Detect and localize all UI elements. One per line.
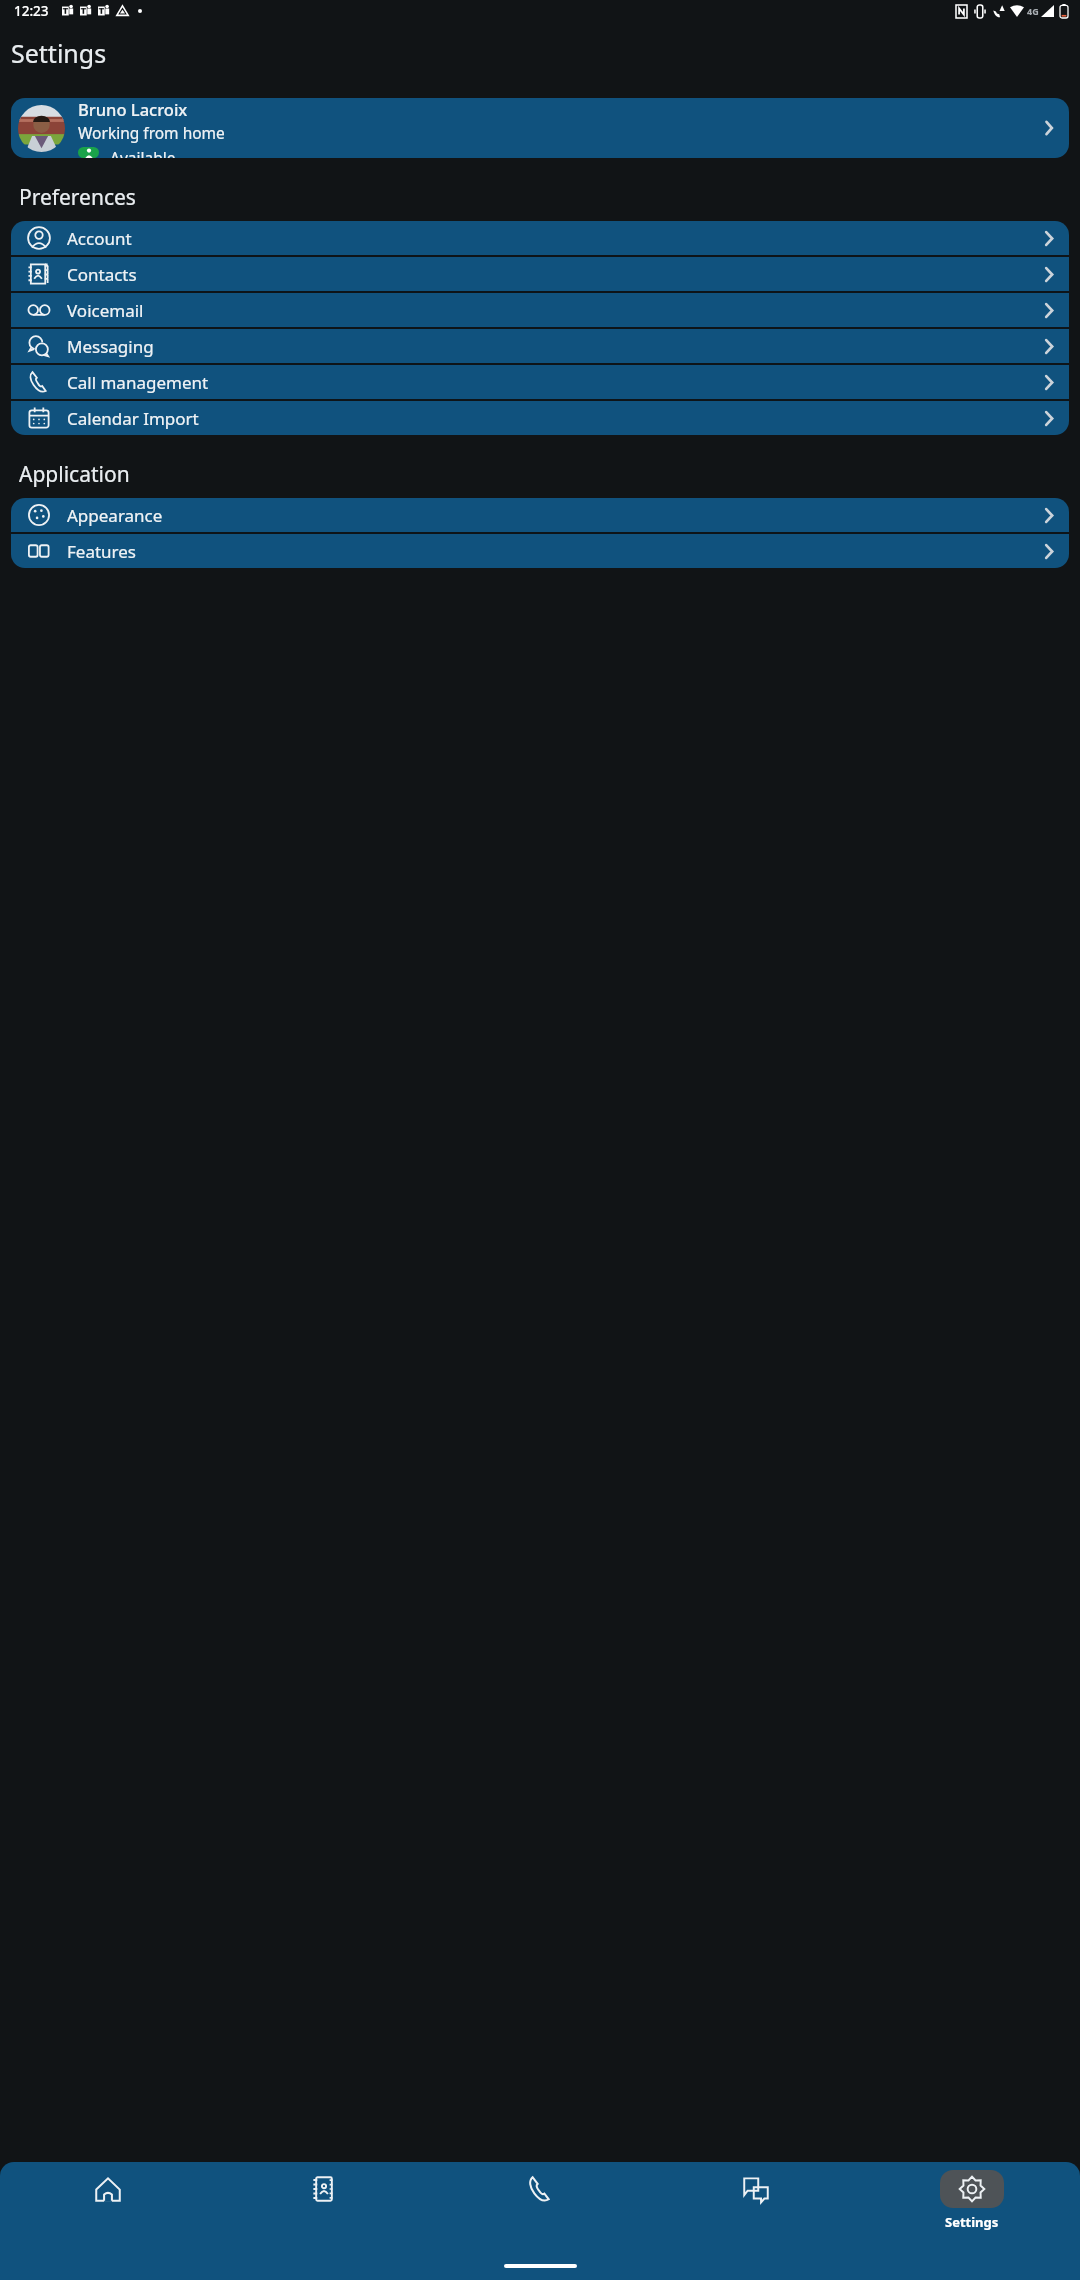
staticText: Features	[67, 540, 137, 563]
staticText: Settings	[945, 2213, 999, 2231]
staticText: Available	[110, 147, 176, 158]
staticText: Settings	[11, 36, 107, 70]
button[interactable]: Phone	[432, 2170, 648, 2252]
button[interactable]: Contacts	[216, 2170, 432, 2252]
button[interactable]: Voicemail	[11, 293, 1069, 327]
staticText: Preferences	[19, 183, 136, 212]
button[interactable]: Messages	[648, 2170, 864, 2252]
button[interactable]: Appearance	[11, 498, 1069, 532]
button[interactable]: Call management	[11, 365, 1069, 399]
staticText: Calendar Import	[67, 407, 199, 430]
button[interactable]: Contacts	[11, 257, 1069, 291]
button[interactable]: Bruno Lacroix	[11, 98, 1069, 158]
staticText: Account	[67, 227, 132, 250]
staticText: Working from home	[78, 122, 225, 143]
button[interactable]: Calendar Import	[11, 401, 1069, 435]
button[interactable]: Messaging	[11, 329, 1069, 363]
staticText: Contacts	[67, 263, 137, 286]
button[interactable]: Home	[0, 2170, 216, 2252]
staticText: Messaging	[67, 335, 154, 358]
staticText: 4G	[1027, 5, 1039, 17]
staticText: Voicemail	[67, 299, 144, 322]
button[interactable]: Account	[11, 221, 1069, 255]
staticText: Call management	[67, 371, 209, 394]
staticText: Bruno Lacroix	[78, 98, 188, 120]
button[interactable]: Features	[11, 534, 1069, 568]
button[interactable]: Settings	[864, 2170, 1080, 2252]
staticText: 12:23	[14, 2, 49, 20]
staticText: Appearance	[67, 504, 163, 527]
staticText: Application	[19, 460, 130, 489]
